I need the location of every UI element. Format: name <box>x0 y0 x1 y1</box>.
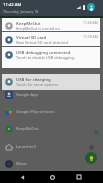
button[interactable]: Account <box>87 3 95 11</box>
button[interactable]: Launcher3 <box>0 138 103 155</box>
staticText: Music <box>16 161 27 166</box>
staticText: New Virtual SD card detected <box>16 40 68 45</box>
staticText: 11:39 AM <box>83 34 98 39</box>
staticText: 11:40 AM <box>83 20 98 25</box>
staticText: USB debugging connected <box>16 49 71 55</box>
button[interactable]: KeepMeOut <box>0 120 103 137</box>
button[interactable]: Google Play services <box>0 103 103 120</box>
staticText: Thursday, January 18 <box>3 9 39 14</box>
staticText: 11:42 AM <box>3 2 22 8</box>
button[interactable]: USB for charging <box>2 74 100 90</box>
button[interactable]: Music <box>0 155 103 172</box>
staticText: Google App <box>16 92 39 97</box>
staticText: Google Play services <box>16 109 55 114</box>
staticText: Launcher3 <box>16 144 36 149</box>
staticText: Virtual SD card <box>16 34 47 40</box>
button[interactable]: USB debugging connected <box>2 47 100 68</box>
staticText: Touch to disable USB debugging. <box>16 55 75 60</box>
staticText: KeepMeOut <box>16 20 41 26</box>
staticText: USB for charging <box>16 76 51 82</box>
staticText: KeepMeOut <box>16 126 39 131</box>
button[interactable]: Recents <box>73 171 85 183</box>
button[interactable]: Google App <box>0 86 103 103</box>
button[interactable]: Home <box>46 171 58 183</box>
staticText: Touch for more options. <box>16 82 59 87</box>
button[interactable]: Add <box>85 152 97 164</box>
button[interactable]: Virtual SD card <box>2 32 100 46</box>
staticText: KeepMeOut is turned on <box>16 26 60 31</box>
button[interactable]: KeepMeOut <box>2 18 100 31</box>
button[interactable]: Back <box>16 171 28 183</box>
